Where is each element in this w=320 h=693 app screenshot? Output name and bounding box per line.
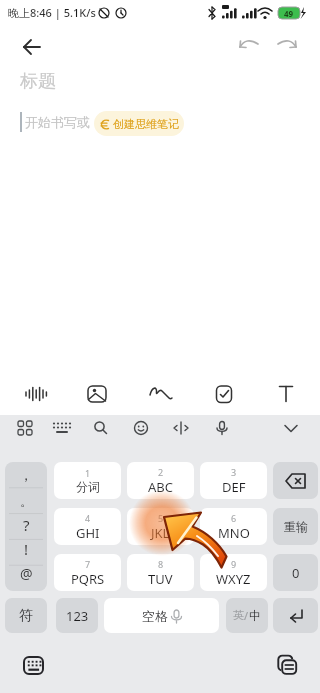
staticText: 创建思维笔记	[113, 117, 179, 131]
staticText: 8	[158, 558, 164, 570]
staticText: 2	[158, 466, 164, 478]
staticText: 标题	[20, 70, 56, 93]
staticText: 0	[292, 564, 300, 582]
staticText: 英	[233, 608, 244, 622]
button[interactable]: @	[5, 561, 47, 585]
staticText: 9	[231, 558, 237, 570]
staticText: ABC	[148, 478, 173, 496]
staticText: 4	[85, 512, 91, 524]
staticText: 晚上8:46 | 5.1K/s	[8, 5, 96, 20]
button[interactable]: 123	[56, 598, 98, 633]
staticText: 49	[284, 8, 294, 19]
button[interactable]: 4	[54, 508, 121, 545]
button[interactable]	[206, 414, 238, 444]
button[interactable]: ?	[5, 513, 47, 537]
staticText: JKL	[151, 524, 170, 542]
button[interactable]: 6	[200, 508, 267, 545]
staticText: MNO	[218, 524, 250, 542]
button[interactable]	[273, 462, 318, 499]
staticText: 开始书写或	[25, 114, 90, 130]
button[interactable]: ，	[5, 464, 47, 488]
button[interactable]	[272, 34, 302, 60]
button[interactable]: 1	[54, 462, 121, 499]
button[interactable]	[264, 374, 308, 414]
button[interactable]	[14, 374, 58, 414]
button[interactable]: 符	[5, 598, 47, 633]
button[interactable]: 重输	[273, 508, 318, 545]
button[interactable]: 8	[127, 554, 194, 591]
staticText: /	[244, 608, 249, 623]
button[interactable]: 3	[200, 462, 267, 499]
staticText: WXYZ	[216, 570, 251, 588]
staticText: PQRS	[71, 570, 105, 588]
button[interactable]	[273, 598, 318, 633]
staticText: 空格	[142, 608, 168, 624]
staticText: 分词	[76, 479, 100, 494]
button[interactable]: 7	[54, 554, 121, 591]
button[interactable]: 0	[273, 554, 318, 591]
button[interactable]	[85, 414, 117, 444]
button[interactable]	[75, 374, 119, 414]
button[interactable]: 2	[127, 462, 194, 499]
button[interactable]: 创建思维笔记	[94, 111, 184, 136]
button[interactable]	[125, 414, 157, 444]
button[interactable]: 5	[127, 508, 194, 545]
staticText: 6	[231, 512, 237, 524]
button[interactable]: 英	[226, 598, 268, 633]
button[interactable]	[165, 414, 197, 444]
button[interactable]: 。	[5, 489, 47, 513]
staticText: 7	[85, 558, 91, 570]
button[interactable]	[275, 414, 307, 444]
button[interactable]	[12, 34, 52, 60]
staticText: 。	[20, 493, 33, 509]
staticText: 5	[158, 512, 164, 524]
button[interactable]	[202, 374, 246, 414]
staticText: @	[20, 564, 33, 583]
button[interactable]: 9	[200, 554, 267, 591]
staticText: 1	[85, 467, 91, 479]
staticText: DEF	[222, 478, 246, 496]
staticText: 重输	[284, 519, 308, 534]
staticText: TUV	[148, 570, 173, 588]
button[interactable]: !	[5, 537, 47, 561]
staticText: ，	[19, 467, 33, 485]
staticText: GHI	[76, 524, 100, 542]
staticText: !	[24, 539, 29, 559]
button[interactable]: 空格	[104, 598, 219, 633]
button[interactable]	[46, 414, 78, 444]
staticText: 123	[66, 607, 89, 625]
button[interactable]	[268, 645, 304, 677]
staticText: 3	[231, 466, 237, 478]
staticText: ?	[23, 515, 30, 535]
button[interactable]	[9, 414, 41, 444]
button[interactable]	[14, 645, 50, 677]
staticText: 中	[249, 608, 261, 623]
button[interactable]	[234, 34, 264, 60]
button[interactable]	[139, 374, 183, 414]
staticText: 符	[19, 607, 33, 625]
